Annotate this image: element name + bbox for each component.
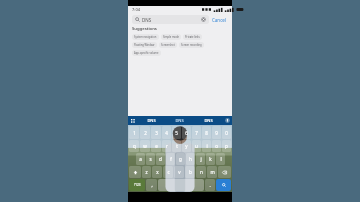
button[interactable]: Floating Window <box>132 42 157 48</box>
button[interactable]: 3 <box>151 126 161 139</box>
button[interactable]: Shift <box>129 166 141 178</box>
button[interactable]: Simple mode <box>161 34 181 40</box>
button[interactable]: DNS <box>132 15 209 24</box>
staticText: s <box>149 156 152 162</box>
button[interactable]: System navigation <box>132 34 159 40</box>
staticText: 8 <box>205 130 208 136</box>
button[interactable]: Voice input <box>223 116 232 125</box>
button[interactable]: v <box>174 166 184 178</box>
staticText: c <box>167 169 170 175</box>
staticText: l <box>220 156 222 162</box>
button[interactable]: DNS <box>165 116 194 125</box>
staticText: e <box>155 143 158 149</box>
button[interactable]: Screenshot <box>159 42 177 48</box>
staticText: Suggestions <box>132 26 157 32</box>
button[interactable]: x <box>152 166 162 178</box>
button[interactable]: w <box>140 140 150 152</box>
staticText: DNS <box>142 17 201 23</box>
staticText: Floating Window <box>134 43 155 47</box>
staticText: Screen recording <box>181 43 202 47</box>
staticText: App-specific volume <box>134 51 159 55</box>
staticText: n <box>200 169 203 175</box>
button[interactable]: DNS <box>194 116 223 125</box>
staticText: 6 <box>185 130 188 136</box>
staticText: 4 <box>165 130 168 136</box>
button[interactable]: , <box>146 179 157 191</box>
button[interactable]: e <box>151 140 161 152</box>
button[interactable]: j <box>196 153 205 165</box>
staticText: ?123 <box>134 183 141 187</box>
button[interactable]: 5 <box>172 126 181 139</box>
button[interactable]: 8 <box>202 126 211 139</box>
staticText: 0 <box>225 130 228 136</box>
button[interactable]: . <box>205 179 215 191</box>
staticText: 1 <box>133 130 136 136</box>
staticText: System navigation <box>134 35 157 39</box>
button[interactable]: l <box>216 153 225 165</box>
staticText: 2 <box>144 130 147 136</box>
staticText: 5 <box>175 130 178 136</box>
button[interactable]: o <box>212 140 221 152</box>
button[interactable]: 2 <box>140 126 150 139</box>
button[interactable]: ?123 <box>129 179 145 191</box>
button[interactable]: c <box>163 166 173 178</box>
button[interactable]: z <box>142 166 151 178</box>
button[interactable]: i <box>202 140 211 152</box>
button[interactable]: b <box>185 166 195 178</box>
button[interactable]: App-specific volume <box>132 50 161 56</box>
button[interactable]: p <box>222 140 231 152</box>
button[interactable]: u <box>192 140 201 152</box>
staticText: Private links <box>185 35 200 39</box>
staticText: x <box>156 169 159 175</box>
staticText: 9 <box>215 130 218 136</box>
staticText: t <box>176 143 178 149</box>
button[interactable]: k <box>206 153 215 165</box>
button[interactable]: q <box>129 140 139 152</box>
button[interactable]: Backspace <box>218 166 231 178</box>
button[interactable]: s <box>146 153 155 165</box>
button[interactable]: a <box>136 153 145 165</box>
staticText: q <box>133 143 136 149</box>
button[interactable]: Keyboard menu <box>128 116 137 125</box>
button[interactable]: 1 <box>129 126 139 139</box>
staticText: h <box>189 156 192 162</box>
staticText: Cancel <box>212 17 227 23</box>
staticText: r <box>166 143 168 149</box>
button[interactable]: h <box>186 153 195 165</box>
button[interactable]: y <box>182 140 191 152</box>
button[interactable]: Cancel <box>211 16 228 24</box>
staticText: m <box>210 169 215 175</box>
button[interactable]: 7 <box>192 126 201 139</box>
staticText: p <box>225 143 228 149</box>
button[interactable]: 4 <box>162 126 171 139</box>
button[interactable]: m <box>207 166 217 178</box>
button[interactable]: Search <box>216 179 231 191</box>
staticText: b <box>189 169 192 175</box>
staticText: DNS <box>204 118 213 123</box>
button[interactable]: n <box>196 166 206 178</box>
button[interactable]: DNS <box>137 116 165 125</box>
staticText: DNS <box>147 118 156 123</box>
button[interactable]: Private links <box>183 34 202 40</box>
button[interactable]: Clear search <box>201 17 206 22</box>
staticText: w <box>143 143 147 149</box>
staticText: 7 <box>195 130 198 136</box>
staticText: o <box>215 143 218 149</box>
staticText: z <box>145 169 148 175</box>
button[interactable]: t <box>172 140 181 152</box>
staticText: f <box>170 156 172 162</box>
button[interactable]: f <box>166 153 175 165</box>
button[interactable]: 0 <box>222 126 231 139</box>
button[interactable]: g <box>176 153 185 165</box>
button[interactable]: 9 <box>212 126 221 139</box>
button[interactable]: Space <box>158 179 204 191</box>
button[interactable]: r <box>162 140 171 152</box>
staticText: Screenshot <box>161 43 175 47</box>
button[interactable]: Screen recording <box>179 42 204 48</box>
staticText: 7:04 <box>132 7 140 12</box>
button[interactable]: 6 <box>182 126 191 139</box>
staticText: j <box>200 156 202 162</box>
button[interactable]: d <box>156 153 165 165</box>
staticText: . <box>209 182 211 188</box>
staticText: DNS <box>175 118 184 123</box>
